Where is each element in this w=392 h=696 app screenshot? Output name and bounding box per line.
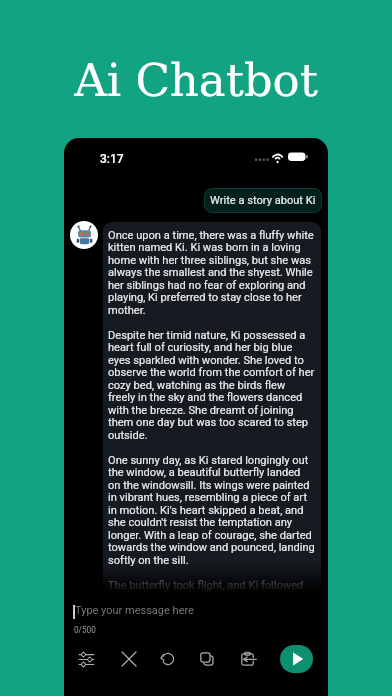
staticText: longer. With a leap of courage, she dart… <box>108 529 312 542</box>
button[interactable]: Regenerate <box>154 645 182 673</box>
staticText: kitten named Ki. Ki was born in a loving <box>108 241 301 254</box>
staticText: The butterfly took flight, and Ki follow… <box>108 579 304 592</box>
staticText: freely in the sky and the flowers danced <box>108 391 303 404</box>
staticText: in motion. Ki's heart skipped a beat, an… <box>108 504 304 517</box>
staticText: on the windowsill. Its wings were painte… <box>108 479 310 492</box>
staticText: cozy bed, watching as the birds flew <box>108 379 286 392</box>
staticText: her siblings had no fear of exploring an… <box>108 279 306 292</box>
staticText: outside. <box>108 429 148 442</box>
staticText: Ai Chatbot <box>74 54 318 106</box>
staticText: Despite her timid nature, Ki possessed a <box>108 329 306 342</box>
staticText: in vibrant hues, resembling a piece of a… <box>108 491 308 504</box>
staticText: Type your message here <box>75 604 194 617</box>
button[interactable]: Send message <box>280 645 313 673</box>
staticText: with the breeze. She dreamt of joining <box>108 404 294 417</box>
staticText: mother. <box>108 304 146 317</box>
staticText: One sunny day, as Ki stared longingly ou… <box>108 454 309 467</box>
staticText: towards the window and pounced, landing <box>108 541 315 554</box>
button[interactable]: Write a story about Ki <box>204 188 322 213</box>
staticText: 0/500 <box>74 625 96 635</box>
staticText: always the smallest and the shyest. Whil… <box>108 266 313 279</box>
button[interactable]: Paste <box>233 645 261 673</box>
button[interactable]: Clear chat <box>115 645 143 673</box>
staticText: eyes sparkled with wonder. She loved to <box>108 354 304 367</box>
staticText: Once upon a time, there was a fluffy whi… <box>108 229 314 242</box>
staticText: she couldn't resist the temptation any <box>108 516 293 529</box>
staticText: Write a story about Ki <box>210 194 316 207</box>
staticText: 3:17 <box>100 152 124 166</box>
button[interactable]: Copy <box>193 645 221 673</box>
button[interactable]: Settings <box>72 645 100 673</box>
staticText: the window, a beautiful butterfly landed <box>108 466 301 479</box>
staticText: softly on the sill. <box>108 554 189 567</box>
button[interactable]: Once upon a time, there was a fluffy whi… <box>103 222 321 593</box>
staticText: playing, Ki preferred to stay close to h… <box>108 291 302 304</box>
staticText: home with her three siblings, but she wa… <box>108 254 312 267</box>
staticText: them one day but was too scared to step <box>108 416 309 429</box>
staticText: heart full of curiosity, and her big blu… <box>108 341 293 354</box>
staticText: observe the world from the comfort of he… <box>108 366 315 379</box>
